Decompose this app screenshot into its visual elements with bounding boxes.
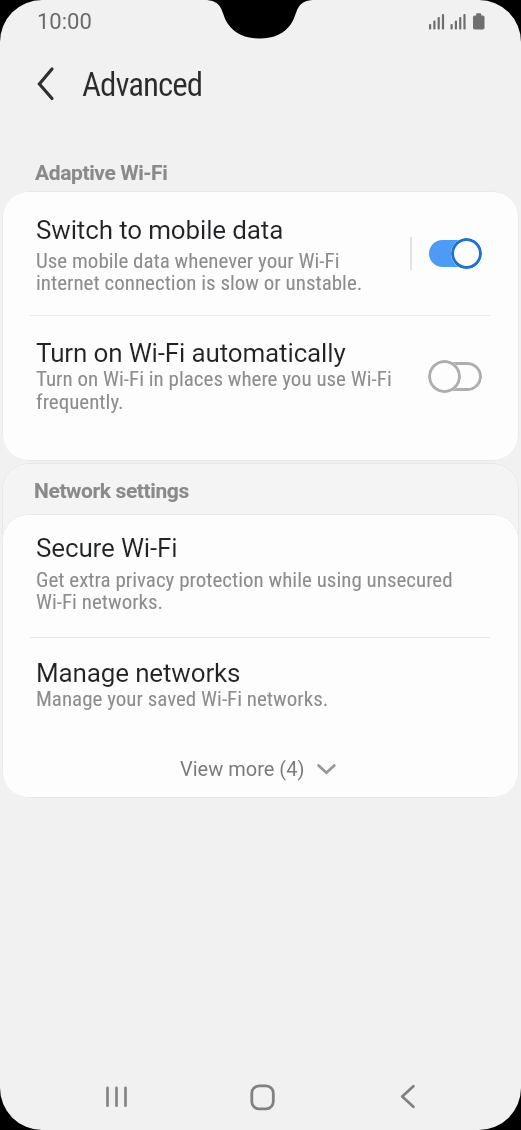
staticText: Network settings bbox=[34, 479, 189, 504]
button[interactable] bbox=[2, 191, 519, 316]
staticText: View more (4) bbox=[180, 757, 305, 780]
button[interactable] bbox=[377, 1066, 437, 1126]
staticText: 10:00 bbox=[37, 9, 92, 35]
staticText: Secure Wi-Fi bbox=[36, 533, 178, 563]
button[interactable] bbox=[232, 1066, 292, 1126]
staticText: internet connection is slow or unstable. bbox=[36, 271, 363, 296]
staticText: Use mobile data whenever your Wi-Fi bbox=[36, 249, 340, 274]
staticText: Manage networks bbox=[36, 658, 241, 688]
button[interactable]: View more (4) bbox=[152, 742, 369, 792]
staticText: Advanced bbox=[82, 65, 203, 104]
button[interactable] bbox=[2, 637, 519, 742]
staticText: Wi-Fi networks. bbox=[36, 590, 164, 615]
staticText: Switch to mobile data bbox=[36, 215, 284, 245]
button[interactable] bbox=[2, 514, 519, 637]
staticText: Turn on Wi-Fi in places where you use Wi… bbox=[36, 367, 392, 392]
button[interactable] bbox=[422, 354, 492, 400]
staticText: frequently. bbox=[36, 390, 124, 415]
button[interactable] bbox=[2, 316, 519, 461]
staticText: Manage your saved Wi-Fi networks. bbox=[36, 687, 329, 712]
button[interactable] bbox=[86, 1066, 146, 1126]
staticText: Turn on Wi-Fi automatically bbox=[36, 338, 346, 368]
button[interactable] bbox=[422, 231, 492, 277]
button[interactable] bbox=[22, 60, 68, 106]
staticText: Adaptive Wi-Fi bbox=[35, 161, 168, 186]
staticText: Get extra privacy protection while using… bbox=[36, 568, 453, 593]
